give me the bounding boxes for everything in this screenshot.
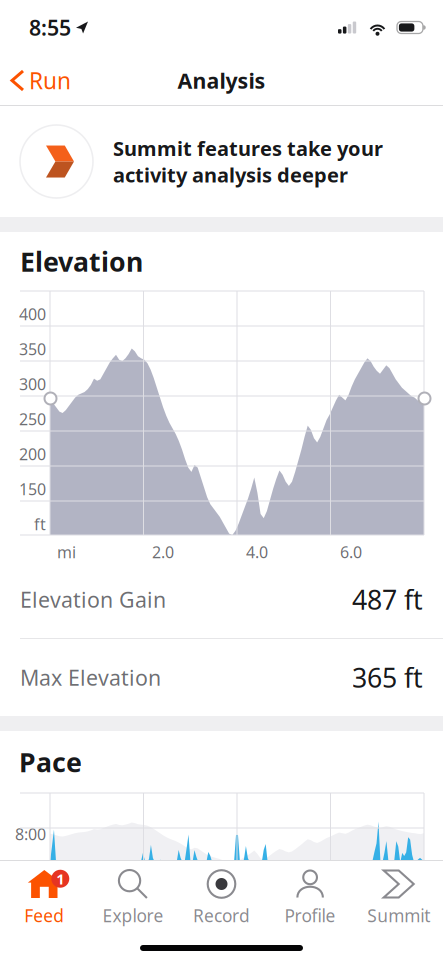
staticText: 350: [19, 338, 46, 360]
staticText: Record: [193, 904, 250, 927]
staticText: Explore: [102, 904, 163, 927]
staticText: Profile: [285, 904, 336, 927]
staticText: 150: [19, 478, 46, 500]
button[interactable]: Record: [177, 861, 266, 960]
staticText: 250: [19, 408, 46, 430]
button[interactable]: Run: [0, 55, 81, 105]
staticText: activity analysis deeper: [113, 161, 348, 188]
staticText: Elevation Gain: [20, 585, 166, 614]
staticText: 487 ft: [352, 582, 423, 617]
button[interactable]: Profile: [266, 861, 354, 960]
staticText: Run: [29, 65, 71, 95]
staticText: Summit features take your: [113, 135, 383, 161]
button[interactable]: Explore: [89, 861, 177, 960]
button[interactable]: Summit features take your: [0, 106, 443, 217]
staticText: 300: [19, 373, 46, 395]
staticText: 6.0: [340, 541, 362, 563]
staticText: Analysis: [177, 66, 265, 95]
button[interactable]: 1: [0, 861, 89, 960]
staticText: 1: [56, 869, 64, 888]
staticText: 4.0: [246, 541, 268, 563]
staticText: Pace: [19, 744, 82, 780]
staticText: 365 ft: [352, 660, 423, 695]
staticText: Feed: [24, 904, 64, 927]
button[interactable]: Summit: [354, 861, 443, 960]
staticText: 200: [19, 443, 46, 465]
staticText: 400: [19, 303, 46, 325]
staticText: 8:00: [15, 823, 46, 845]
staticText: Max Elevation: [20, 663, 161, 692]
staticText: ft: [34, 513, 46, 535]
staticText: Summit: [367, 904, 430, 927]
staticText: 8:55: [29, 13, 71, 42]
staticText: 9:00: [15, 858, 46, 880]
staticText: Elevation: [20, 244, 143, 279]
staticText: 2.0: [152, 541, 174, 563]
staticText: mi: [57, 541, 76, 563]
